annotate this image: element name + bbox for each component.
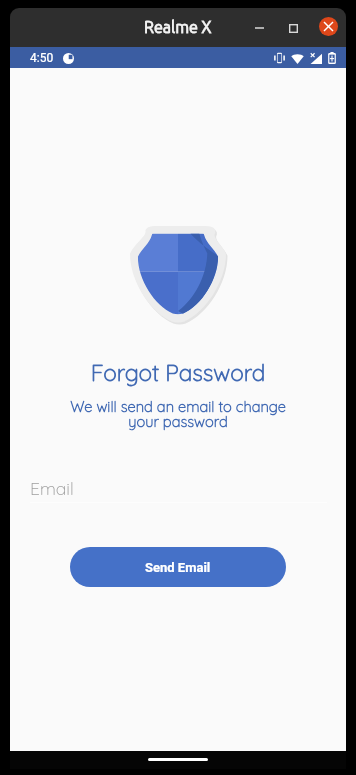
staticText: Send Email bbox=[145, 560, 211, 575]
staticText: 4:50 bbox=[30, 51, 54, 65]
button[interactable]: Close window bbox=[319, 17, 338, 36]
staticText: Forgot Password bbox=[10, 358, 346, 386]
button[interactable]: Maximize window bbox=[267, 14, 320, 42]
staticText: Realme X bbox=[144, 18, 212, 36]
button[interactable]: Email address input bbox=[30, 472, 327, 504]
button[interactable]: Minimize window bbox=[244, 14, 267, 42]
button[interactable]: Send Email bbox=[70, 547, 286, 587]
staticText: We will send an email to change your pas… bbox=[10, 397, 346, 431]
staticText: Email bbox=[30, 477, 74, 499]
